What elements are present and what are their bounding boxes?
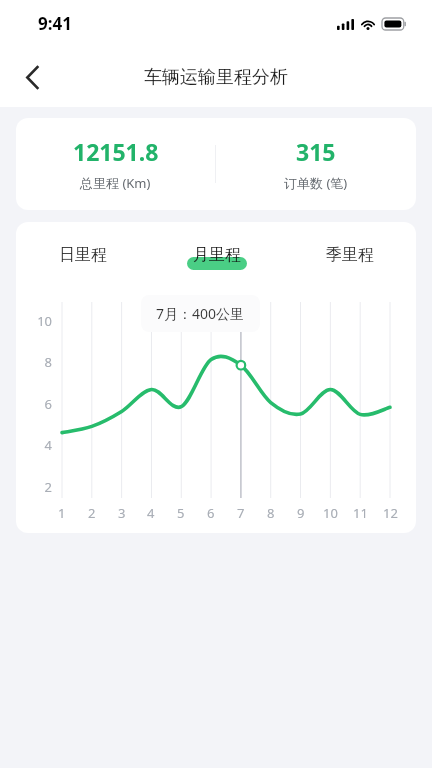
staticText: 8 <box>44 353 52 371</box>
staticText: 10 <box>323 504 338 522</box>
staticText: 季里程 <box>326 245 374 265</box>
staticText: 12 <box>383 504 398 522</box>
staticText: 2 <box>44 478 52 496</box>
button[interactable]: 日里程 <box>16 238 150 272</box>
staticText: 2 <box>88 504 96 522</box>
staticText: 3 <box>118 504 126 522</box>
staticText: 4 <box>44 436 52 454</box>
staticText: 日里程 <box>59 245 107 265</box>
staticText: 4 <box>147 504 155 522</box>
staticText: 10 <box>37 312 52 330</box>
button[interactable]: Back <box>8 53 56 101</box>
staticText: 总里程 (Km) <box>80 174 151 192</box>
button[interactable]: 12151.8 <box>16 118 215 210</box>
button[interactable]: 315 <box>216 118 416 210</box>
staticText: 车辆运输里程分析 <box>144 66 288 89</box>
staticText: 7 <box>237 504 245 522</box>
button[interactable]: 季里程 <box>283 238 416 272</box>
staticText: 6 <box>44 395 52 413</box>
staticText: 订单数 (笔) <box>284 174 348 192</box>
staticText: 5 <box>177 504 185 522</box>
staticText: 315 <box>296 136 336 167</box>
staticText: 7月：400公里 <box>156 304 245 323</box>
staticText: 月里程 <box>193 245 241 265</box>
staticText: 6 <box>207 504 215 522</box>
button[interactable]: 月里程 <box>150 238 283 272</box>
button[interactable]: 7月：400公里 <box>156 304 245 323</box>
staticText: 1 <box>58 504 66 522</box>
staticText: 8 <box>267 504 275 522</box>
staticText: 11 <box>353 504 368 522</box>
staticText: 12151.8 <box>73 136 159 167</box>
staticText: 9 <box>297 504 305 522</box>
staticText: 9:41 <box>38 12 72 35</box>
